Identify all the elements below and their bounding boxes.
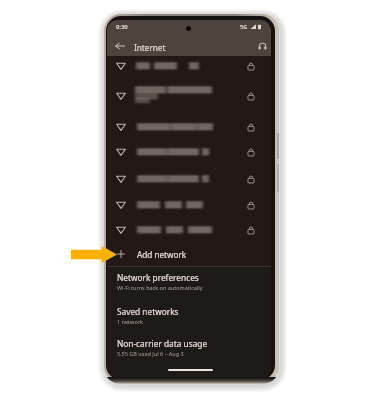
staticText: 5.55 GB used Jul 6 – Aug 3: [117, 350, 184, 357]
button[interactable]: [107, 115, 271, 139]
staticText: 9:30: [116, 23, 128, 31]
button[interactable]: [107, 84, 271, 108]
button[interactable]: [107, 167, 271, 191]
staticText: Wi-Fi turns back on automatically: [117, 284, 203, 291]
staticText: Internet: [134, 42, 166, 53]
button[interactable]: Headset: [254, 38, 270, 54]
button[interactable]: Network preferences: [117, 272, 271, 291]
staticText: Add network: [137, 249, 187, 260]
button[interactable]: Saved networks: [117, 306, 271, 325]
staticText: 5G: [240, 23, 248, 31]
button[interactable]: Non-carrier data usage: [117, 338, 271, 357]
button[interactable]: [107, 54, 271, 78]
button[interactable]: Add network: [107, 242, 271, 266]
button[interactable]: [107, 218, 271, 242]
staticText: 1 network: [117, 318, 143, 325]
button[interactable]: Back: [112, 38, 128, 54]
button[interactable]: [107, 140, 271, 164]
button[interactable]: [107, 193, 271, 217]
staticText: Network preferences: [117, 272, 199, 283]
staticText: Saved networks: [117, 306, 179, 317]
staticText: Non-carrier data usage: [117, 338, 208, 349]
